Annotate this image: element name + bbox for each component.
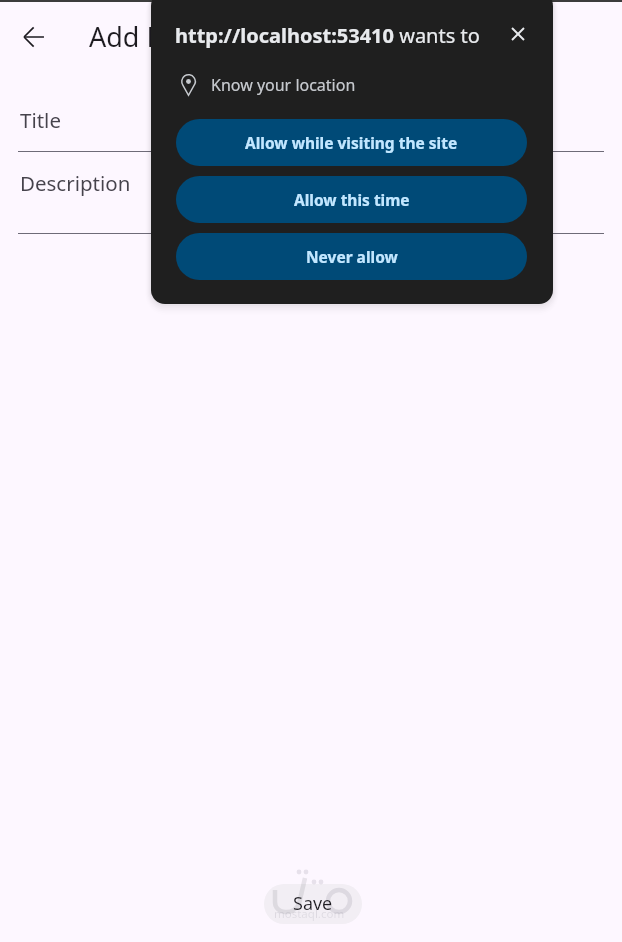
button[interactable]: Title (18, 100, 604, 152)
button[interactable]: Close (503, 19, 533, 49)
staticText: Description (20, 169, 131, 197)
staticText: Allow while visiting the site (245, 132, 458, 153)
button[interactable]: Description (18, 163, 604, 234)
button[interactable]: Allow while visiting the site (176, 119, 527, 166)
staticText: Add Note (89, 18, 209, 55)
staticText: http://localhost:53410 wants to (175, 22, 480, 49)
button[interactable]: Allow this time (176, 176, 527, 223)
button[interactable]: Save (264, 884, 362, 924)
staticText: Never allow (306, 246, 398, 267)
staticText: Save (293, 891, 333, 916)
staticText: Know your location (211, 74, 356, 96)
staticText: Allow this time (294, 189, 410, 210)
button[interactable]: Back (10, 13, 58, 61)
staticText: Title (20, 106, 61, 134)
staticText: mostaql.com (274, 906, 345, 922)
button[interactable]: Never allow (176, 233, 527, 280)
